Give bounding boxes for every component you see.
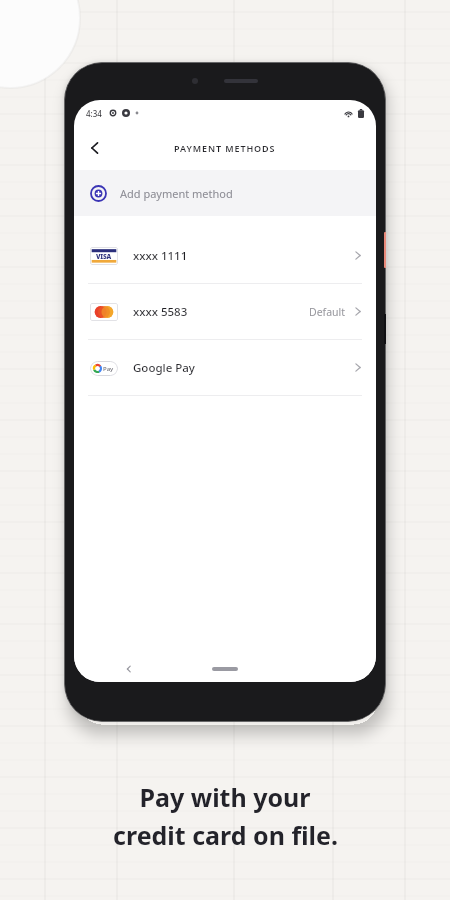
staticText: credit card on file. (113, 818, 338, 852)
button[interactable]: Home (212, 667, 238, 671)
button[interactable]: Back (78, 131, 112, 165)
staticText: Google Pay (133, 360, 195, 376)
staticText: Pay (103, 365, 114, 373)
staticText: Add payment method (120, 186, 233, 201)
staticText: VISA (96, 252, 112, 261)
staticText: 4:34 (86, 108, 102, 119)
button[interactable]: Add payment method (74, 170, 376, 216)
staticText: xxxx 5583 (133, 304, 188, 320)
staticText: Default (309, 305, 346, 319)
button[interactable]: VISA (74, 228, 376, 283)
button[interactable]: Back (118, 658, 140, 680)
staticText: xxxx 1111 (133, 248, 188, 264)
staticText: PAYMENT METHODS (174, 142, 276, 154)
staticText: Pay with your (139, 780, 311, 814)
button[interactable]: Pay (74, 340, 376, 395)
button[interactable]: xxxx 5583 (74, 284, 376, 339)
